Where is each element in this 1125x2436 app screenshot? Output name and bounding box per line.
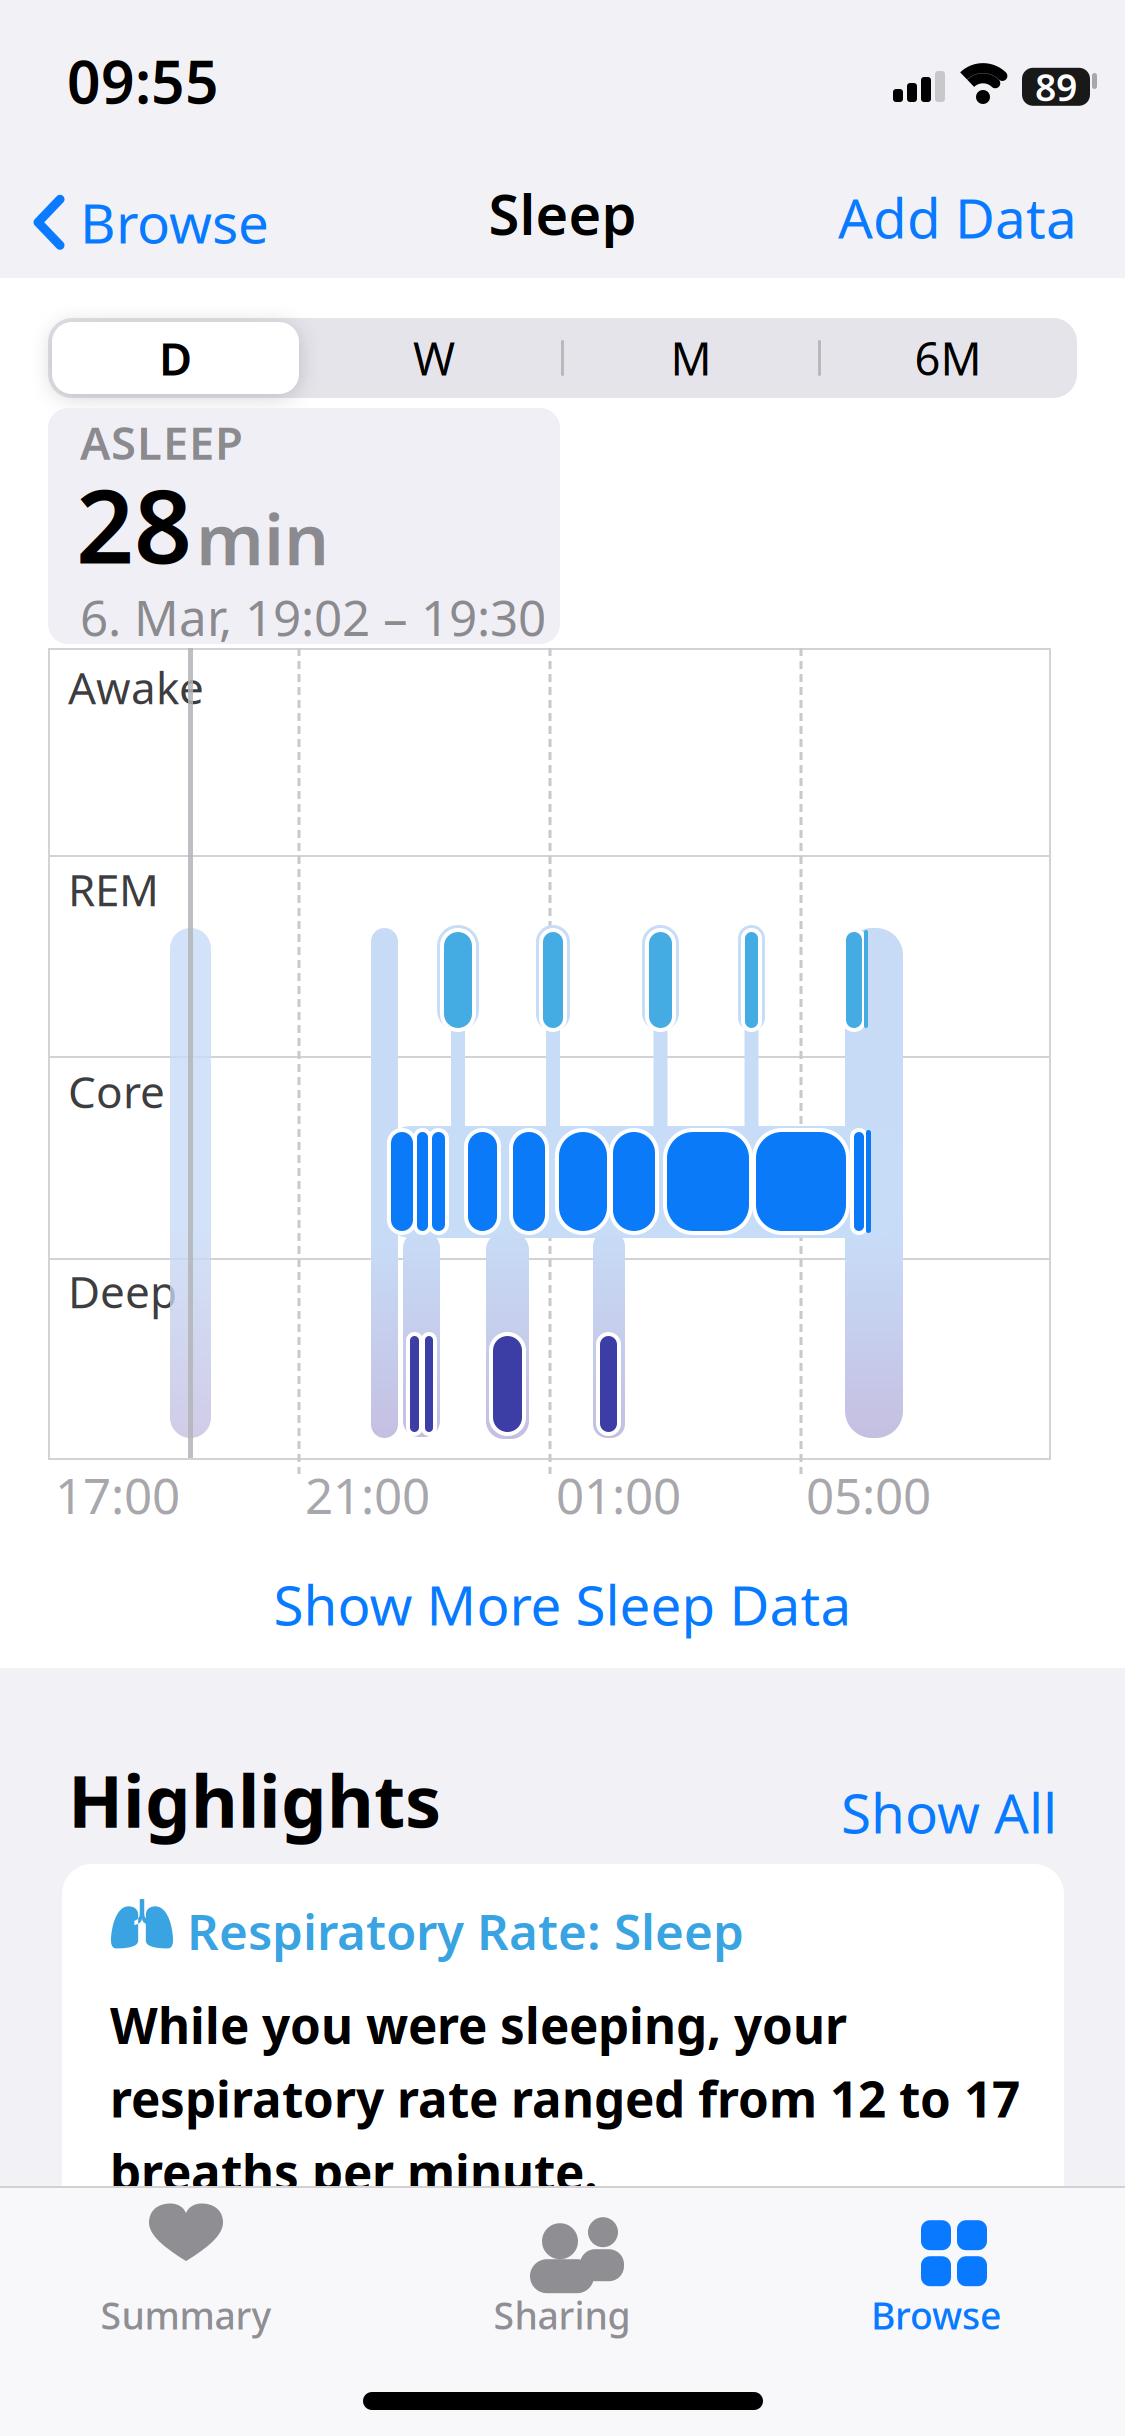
staticText: W (413, 328, 455, 388)
button[interactable]: W (334, 320, 534, 396)
staticText: While you were sleeping, your (110, 1992, 847, 2057)
staticText: Respiratory Rate: Sleep (187, 1898, 744, 1963)
staticText: M (670, 328, 711, 388)
button[interactable]: Summary (36, 2206, 336, 2336)
button[interactable]: Sharing (412, 2206, 712, 2336)
staticText: 01:00 (556, 1462, 681, 1527)
button[interactable]: Show All (757, 1776, 1057, 1849)
staticText: Sharing (493, 2290, 630, 2340)
button[interactable]: Browse (34, 186, 269, 259)
staticText: 05:00 (806, 1462, 931, 1527)
staticText: Browse (80, 186, 269, 259)
staticText: 28 (76, 457, 192, 592)
button[interactable]: M (591, 320, 791, 396)
staticText: REM (68, 860, 159, 918)
button[interactable]: Respiratory Rate: Sleep (62, 1864, 1064, 2314)
staticText: D (159, 328, 192, 388)
button[interactable]: Browse (786, 2206, 1086, 2336)
staticText: 09:55 (67, 42, 219, 120)
button[interactable]: 6M (848, 320, 1048, 396)
staticText: Deep (68, 1262, 177, 1320)
staticText: Core (68, 1062, 165, 1120)
staticText: 6M (914, 328, 981, 388)
button[interactable]: Show More Sleep Data (0, 1568, 1125, 1641)
staticText: Awake (68, 658, 204, 716)
staticText: Browse (871, 2290, 1001, 2340)
button[interactable]: D (52, 322, 299, 394)
staticText: Show More Sleep Data (273, 1568, 851, 1641)
staticText: min (196, 491, 329, 585)
staticText: Sleep (488, 176, 636, 250)
staticText: ASLEEP (80, 412, 243, 472)
staticText: Add Data (838, 181, 1077, 254)
staticText: 6. Mar, 19:02 – 19:30 (80, 584, 546, 649)
staticText: 17:00 (55, 1462, 180, 1527)
button[interactable]: Add Data (757, 181, 1077, 254)
staticText: 89 (1035, 62, 1077, 112)
staticText: respiratory rate ranged from 12 to 17 (110, 2065, 1020, 2131)
staticText: Show All (841, 1776, 1057, 1849)
staticText: Summary (100, 2290, 271, 2340)
staticText: breaths per minute. (110, 2139, 598, 2204)
staticText: Highlights (68, 1752, 441, 1848)
staticText: 21:00 (305, 1462, 430, 1527)
